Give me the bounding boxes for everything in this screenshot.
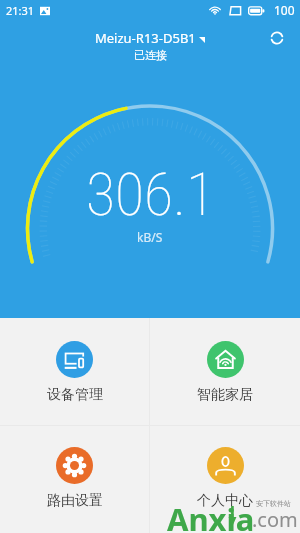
staticText: 智能家居 (197, 386, 253, 404)
button[interactable]: Meizu-R13-D5B1 (95, 29, 205, 62)
staticText: 100 (274, 2, 295, 18)
staticText: 设备管理 (47, 386, 103, 404)
staticText: kB/S (137, 229, 163, 245)
staticText: 已连接 (134, 48, 167, 62)
other: Profile (207, 447, 244, 484)
staticText: Anxia (167, 498, 255, 533)
staticText: 个人中心 (197, 492, 253, 510)
other: Smart home (207, 341, 244, 378)
button[interactable]: Smart home (150, 318, 300, 425)
staticText: .com (252, 506, 298, 533)
button[interactable]: Device management (0, 318, 149, 425)
other: Device management (56, 341, 93, 378)
staticText: 路由设置 (47, 492, 103, 510)
button[interactable]: Refresh (264, 25, 289, 50)
staticText: 306.1 (86, 159, 215, 229)
staticText: 21:31 (6, 3, 35, 18)
button[interactable]: Profile (150, 424, 300, 531)
button[interactable]: Router settings (0, 424, 149, 531)
other: Router settings (56, 447, 93, 484)
staticText: 安下软件站 (256, 499, 291, 508)
staticText: Meizu-R13-D5B1 (95, 29, 196, 47)
